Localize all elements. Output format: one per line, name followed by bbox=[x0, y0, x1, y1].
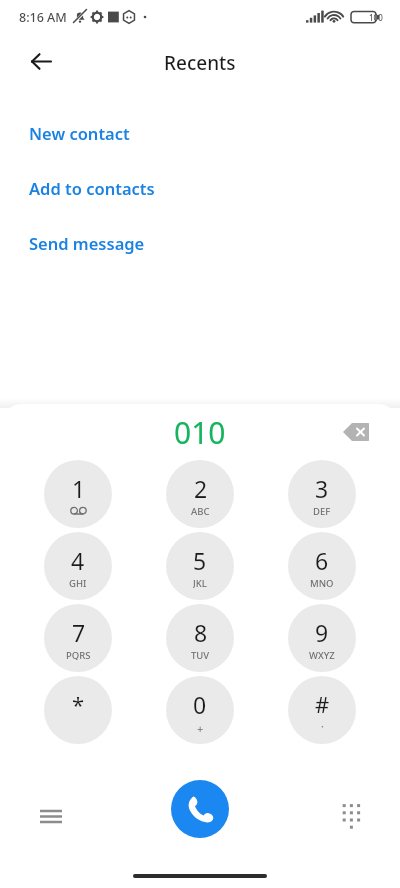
button[interactable]: Backspace bbox=[334, 410, 378, 454]
button[interactable]: * bbox=[44, 676, 112, 744]
button[interactable]: 2 bbox=[166, 460, 234, 528]
staticText: GHI bbox=[69, 577, 87, 588]
staticText: ; bbox=[321, 720, 324, 731]
button[interactable]: # bbox=[288, 676, 356, 744]
button[interactable]: 9 bbox=[288, 604, 356, 672]
button[interactable]: Dialpad bbox=[327, 790, 375, 838]
staticText: TUV bbox=[191, 649, 210, 660]
staticText: WXYZ bbox=[309, 649, 335, 660]
staticText: MNO bbox=[310, 577, 334, 588]
staticText: + bbox=[197, 721, 204, 732]
staticText: DEF bbox=[313, 505, 331, 516]
button[interactable]: 7 bbox=[44, 604, 112, 672]
staticText: * bbox=[72, 689, 85, 719]
button[interactable]: Send message bbox=[0, 215, 400, 270]
staticText: # bbox=[315, 689, 330, 719]
staticText: PQRS bbox=[66, 649, 91, 660]
staticText: 1 bbox=[72, 473, 86, 504]
staticText: 2 bbox=[194, 473, 208, 504]
staticText: 8:16 AM bbox=[19, 9, 67, 26]
staticText: New contact bbox=[29, 122, 130, 144]
staticText: 4 bbox=[71, 545, 85, 576]
staticText: 010 bbox=[174, 412, 226, 453]
button[interactable]: 8 bbox=[166, 604, 234, 672]
button[interactable]: 6 bbox=[288, 532, 356, 600]
button[interactable]: Call bbox=[171, 780, 229, 838]
staticText: JKL bbox=[193, 577, 207, 588]
button[interactable]: 3 bbox=[288, 460, 356, 528]
staticText: 7 bbox=[72, 617, 86, 648]
staticText: ABC bbox=[191, 505, 210, 516]
button[interactable]: Back bbox=[18, 38, 64, 84]
button[interactable]: New contact bbox=[0, 105, 400, 160]
staticText: 9 bbox=[315, 617, 329, 648]
staticText: 6 bbox=[315, 545, 329, 576]
button[interactable]: 0 bbox=[166, 676, 234, 744]
staticText: Add to contacts bbox=[29, 177, 155, 199]
button[interactable]: Menu bbox=[27, 792, 75, 840]
staticText: 3 bbox=[315, 473, 329, 504]
button[interactable]: 4 bbox=[44, 532, 112, 600]
button[interactable]: Add to contacts bbox=[0, 160, 400, 215]
staticText: Send message bbox=[29, 232, 145, 254]
staticText: 5 bbox=[193, 545, 207, 576]
staticText: 100 bbox=[369, 12, 383, 23]
button[interactable]: 5 bbox=[166, 532, 234, 600]
staticText: 8 bbox=[194, 617, 208, 648]
staticText: 0 bbox=[193, 689, 207, 720]
button[interactable]: 1 bbox=[44, 460, 112, 528]
staticText: Recents bbox=[164, 50, 236, 76]
